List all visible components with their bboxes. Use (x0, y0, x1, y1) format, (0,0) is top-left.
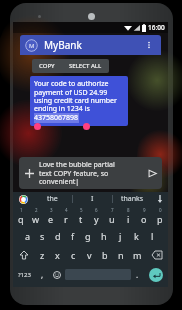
button[interactable]: h (96, 226, 112, 245)
button[interactable]: x (50, 245, 65, 264)
button[interactable]: d (50, 226, 65, 245)
button[interactable]: 4 (58, 206, 73, 226)
staticText: s (40, 230, 45, 242)
button[interactable]: . (131, 264, 144, 285)
button[interactable]: I (73, 192, 112, 206)
button[interactable]: Google (13, 192, 33, 206)
staticText: i (127, 213, 130, 225)
button[interactable]: 0 (152, 206, 168, 226)
button[interactable]: 5 (73, 206, 88, 226)
button[interactable]: f (65, 226, 80, 245)
button[interactable]: n (113, 245, 129, 264)
staticText: 3 (50, 207, 53, 213)
staticText: Your code to authorize payment of USD 24… (34, 79, 117, 113)
button[interactable]: 9 (136, 206, 152, 226)
staticText: 9 (143, 207, 146, 213)
staticText: z (40, 249, 45, 261)
button[interactable]: z (35, 245, 50, 264)
staticText: 0 (159, 207, 162, 213)
staticText: k (134, 230, 139, 242)
button[interactable]: a (20, 226, 35, 245)
staticText: 7 (111, 207, 114, 213)
staticText: 5 (80, 207, 83, 213)
staticText: 43758067898 (34, 113, 79, 123)
staticText: b (102, 249, 108, 261)
button[interactable]: 1 (13, 206, 28, 226)
button[interactable]: thanks (113, 192, 152, 206)
button[interactable]: b (97, 245, 113, 264)
staticText: d (55, 230, 61, 242)
staticText: u (109, 213, 115, 225)
button[interactable]: More options (142, 38, 156, 52)
staticText: ?123 (18, 271, 31, 279)
button[interactable]: Enter (149, 268, 163, 282)
staticText: e (48, 213, 54, 225)
staticText: thanks (121, 194, 144, 204)
staticText: c (71, 249, 76, 261)
button[interactable]: k (128, 226, 144, 245)
staticText: SELECT ALL (69, 62, 102, 70)
staticText: a (25, 230, 31, 242)
staticText: h (101, 230, 107, 242)
staticText: 1 (20, 207, 23, 213)
button[interactable]: v (81, 245, 97, 264)
button[interactable]: SELECT ALL (62, 59, 109, 73)
staticText: p (157, 213, 163, 225)
staticText: 8 (127, 207, 130, 213)
button[interactable]: Voice input (152, 192, 168, 206)
button[interactable]: 3 (43, 206, 58, 226)
staticText: n (118, 249, 124, 261)
staticText: g (85, 230, 91, 242)
button[interactable]: c (65, 245, 81, 264)
button[interactable]: Send (145, 166, 159, 180)
staticText: Love the bubble partial text COPY featur… (39, 160, 142, 186)
staticText: x (55, 249, 60, 261)
button[interactable]: 7 (104, 206, 120, 226)
staticText: M (29, 42, 35, 50)
button[interactable]: m (129, 245, 145, 264)
button[interactable]: COPY (32, 59, 62, 73)
button[interactable]: Backspace (145, 245, 168, 264)
staticText: I (91, 194, 94, 204)
staticText: , (41, 269, 44, 280)
button[interactable]: 2 (28, 206, 43, 226)
staticText: 2 (35, 207, 38, 213)
staticText: v (87, 249, 92, 261)
staticText: 4 (65, 207, 68, 213)
staticText: w (32, 213, 40, 225)
staticText: l (151, 230, 154, 242)
button[interactable]: Shift (13, 245, 35, 264)
button[interactable]: s (35, 226, 50, 245)
staticText: MyBank (44, 38, 82, 52)
button[interactable]: Emoji (49, 264, 65, 285)
staticText: m (133, 249, 142, 261)
staticText: . (136, 269, 139, 280)
button[interactable]: 8 (120, 206, 136, 226)
staticText: y (94, 213, 99, 225)
button[interactable]: Your code to authorize payment of USD 24… (30, 76, 128, 126)
button[interactable]: g (80, 226, 96, 245)
button[interactable]: the (33, 192, 72, 206)
staticText: j (119, 230, 122, 242)
button[interactable]: Add attachment (22, 166, 36, 180)
button[interactable]: 6 (88, 206, 104, 226)
button[interactable]: , (36, 264, 49, 285)
staticText: 6 (95, 207, 98, 213)
staticText: the (47, 194, 58, 204)
button[interactable]: M (20, 35, 161, 55)
staticText: 16:00 (148, 23, 165, 32)
button[interactable]: j (112, 226, 128, 245)
staticText: f (71, 230, 75, 242)
staticText: o (141, 213, 147, 225)
staticText: t (79, 213, 83, 225)
button[interactable]: ?123 (13, 264, 36, 285)
button[interactable]: l (144, 226, 160, 245)
staticText: r (64, 213, 68, 225)
staticText: q (18, 213, 24, 225)
staticText: COPY (39, 62, 55, 70)
